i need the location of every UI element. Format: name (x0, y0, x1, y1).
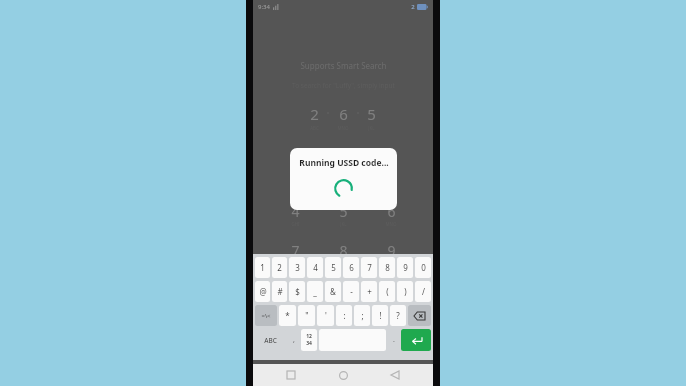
button[interactable]: ? (390, 305, 406, 326)
button[interactable]: 4 (307, 257, 323, 278)
button[interactable]: 3 (289, 257, 305, 278)
button[interactable]: 3 (371, 161, 411, 186)
button[interactable]: $ (289, 281, 305, 302)
button[interactable]: 6 (343, 257, 359, 278)
staticText: 8 (385, 262, 390, 273)
staticText: / (422, 286, 425, 297)
staticText: 5 (331, 262, 336, 273)
button[interactable]: ! (372, 305, 388, 326)
staticText: 4 (291, 202, 300, 221)
staticText: 1 (260, 262, 265, 273)
staticText: 0 (421, 262, 426, 273)
staticText: ' (325, 310, 327, 321)
staticText: . (393, 335, 395, 345)
button[interactable]: 7 (361, 257, 377, 278)
button[interactable]: & (325, 281, 341, 302)
staticText: 8 (339, 241, 348, 254)
staticText: + (367, 286, 372, 297)
staticText: ? (396, 310, 400, 321)
button[interactable]: Recents (277, 364, 305, 386)
staticText: & (330, 286, 336, 297)
button[interactable]: 6 (371, 202, 411, 227)
button[interactable]: ' (317, 305, 334, 326)
staticText: =\< (261, 312, 271, 320)
staticText: 5 (367, 104, 376, 124)
staticText: 9 (403, 262, 408, 273)
button[interactable]: 9 (371, 241, 411, 254)
button[interactable]: @ (255, 281, 270, 302)
staticText: ABC (264, 336, 277, 345)
button[interactable]: . (388, 329, 399, 351)
staticText: 9 (387, 241, 396, 254)
staticText: 4 (313, 262, 318, 273)
staticText: _ (313, 286, 317, 297)
staticText: 5 (339, 202, 348, 221)
button[interactable]: 4 (275, 202, 315, 227)
button[interactable]: 5 (323, 202, 363, 227)
button[interactable]: 2 (272, 257, 287, 278)
staticText: ABC (339, 180, 348, 186)
button[interactable]: Home (329, 364, 357, 386)
button[interactable]: : (336, 305, 352, 326)
staticText: 9:34 (258, 3, 270, 11)
button[interactable]: ABC (255, 329, 286, 351)
button[interactable]: - (343, 281, 359, 302)
staticText: - (350, 286, 353, 297)
button[interactable]: ; (354, 305, 370, 326)
staticText: 12 (306, 333, 312, 340)
button[interactable]: ) (397, 281, 413, 302)
staticText: 6 (387, 202, 396, 221)
staticText: ; (361, 310, 364, 321)
staticText: 3 (295, 262, 300, 273)
staticText: , (293, 335, 295, 345)
button[interactable]: # (272, 281, 287, 302)
button[interactable]: 1 (275, 161, 315, 180)
button[interactable]: 2 (323, 161, 363, 186)
staticText: $ (295, 286, 300, 297)
button[interactable]: * (279, 305, 296, 326)
staticText: Supports Smart Search (300, 60, 387, 71)
button[interactable]: Back (381, 364, 409, 386)
staticText: : (343, 310, 346, 321)
staticText: ! (379, 310, 382, 321)
staticText: 6 (349, 262, 354, 273)
staticText: 2 (310, 104, 319, 124)
staticText: * (285, 310, 290, 321)
staticText: ( (386, 286, 389, 297)
button[interactable]: 0 (415, 257, 431, 278)
staticText: # (277, 286, 283, 297)
staticText: 2 (339, 161, 348, 180)
staticText: @ (259, 286, 267, 297)
button[interactable]: + (361, 281, 377, 302)
staticText: 3 (387, 161, 396, 180)
staticText: Running USSD code... (299, 157, 389, 169)
button[interactable]: " (298, 305, 315, 326)
button[interactable]: 9 (397, 257, 413, 278)
button[interactable]: 7 (275, 241, 315, 254)
button[interactable]: 8 (379, 257, 395, 278)
button[interactable]: _ (307, 281, 323, 302)
button[interactable]: Numbers (301, 329, 317, 351)
button[interactable]: Backspace (408, 305, 431, 326)
button[interactable]: =\< (255, 305, 277, 326)
staticText: ) (404, 286, 407, 297)
staticText: 6 (339, 104, 348, 124)
button[interactable]: Enter (401, 329, 431, 351)
staticText: 2 (277, 262, 282, 273)
button[interactable]: / (415, 281, 431, 302)
staticText: 34 (306, 340, 312, 347)
button[interactable]: , (288, 329, 299, 351)
button[interactable]: 8 (323, 241, 363, 254)
button[interactable]: ( (379, 281, 395, 302)
button[interactable]: 1 (255, 257, 270, 278)
button[interactable]: 5 (325, 257, 341, 278)
